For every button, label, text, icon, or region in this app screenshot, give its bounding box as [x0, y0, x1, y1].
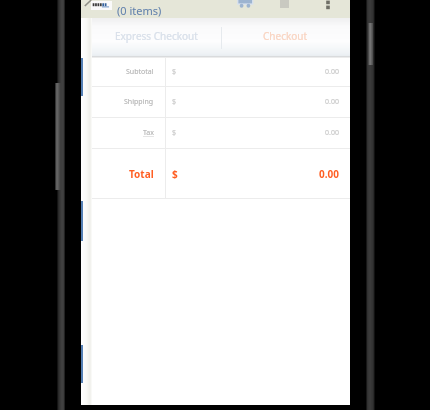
- staticText: $: [172, 67, 177, 77]
- staticText: Tax: [143, 128, 154, 138]
- staticText: Total: [129, 167, 154, 181]
- staticText: 0.00: [319, 167, 339, 181]
- button[interactable]: Checkout: [221, 18, 350, 57]
- staticText: Express Checkout: [115, 29, 198, 43]
- staticText: $: [172, 97, 177, 107]
- staticText: (0 items): [117, 3, 162, 18]
- button[interactable]: [91, 1, 112, 10]
- staticText: 0.00: [325, 67, 339, 77]
- button[interactable]: More options: [322, 0, 334, 9]
- staticText: 0.00: [325, 128, 339, 138]
- staticText: 0.00: [325, 97, 339, 107]
- staticText: Shipping: [124, 97, 154, 107]
- staticText: Checkout: [263, 29, 308, 43]
- staticText: Subtotal: [126, 67, 154, 77]
- button[interactable]: Shopping cart: [234, 0, 256, 8]
- button[interactable]: Express Checkout: [92, 18, 221, 57]
- staticText: $: [172, 167, 178, 181]
- staticText: $: [172, 128, 177, 138]
- button[interactable]: Back: [84, 0, 92, 6]
